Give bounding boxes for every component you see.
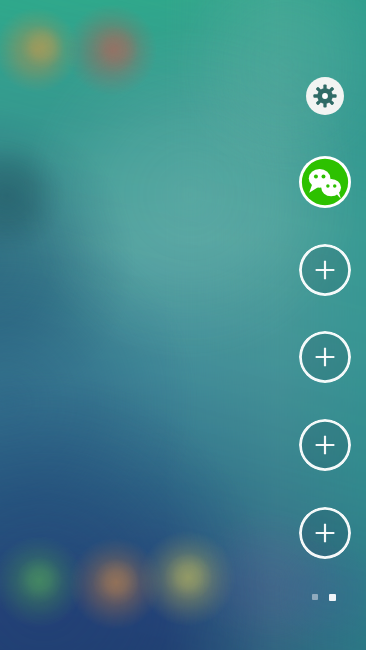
button[interactable]: Page indicator: [310, 591, 340, 603]
button[interactable]: Settings: [306, 77, 344, 115]
button[interactable]: Add shortcut: [299, 507, 351, 559]
button[interactable]: Add shortcut: [299, 419, 351, 471]
button[interactable]: Add shortcut: [299, 244, 351, 296]
button[interactable]: WeChat: [299, 156, 351, 208]
button[interactable]: Add shortcut: [299, 331, 351, 383]
